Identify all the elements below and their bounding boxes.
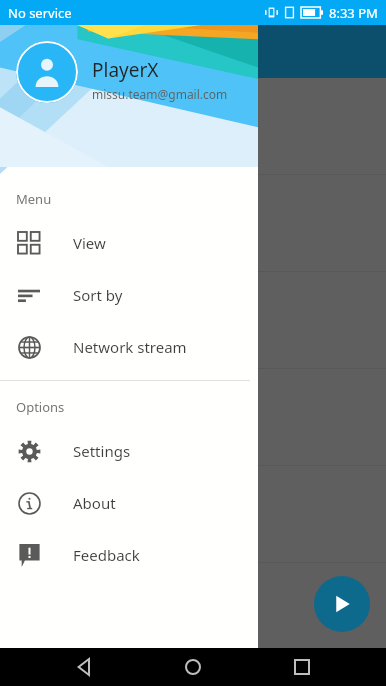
button[interactable]: View	[0, 217, 258, 269]
staticText: Menu	[16, 190, 52, 208]
staticText: sample_video_001.rmvb	[14, 213, 184, 233]
button[interactable]: Sort by	[0, 269, 258, 321]
button[interactable]: Back	[61, 648, 109, 686]
button[interactable]: Network stream	[0, 321, 258, 373]
staticText: No service	[8, 4, 72, 22]
staticText: 8:33 PM	[329, 4, 378, 22]
staticText: Big.Buck.Bunny.2008.1080p.mp4	[14, 116, 246, 136]
button[interactable]: Play	[314, 576, 370, 632]
staticText: PlayerX	[92, 57, 159, 83]
staticText: About	[73, 493, 116, 513]
staticText: movie_trailer_hd.rmvb	[14, 504, 172, 524]
button[interactable]: About	[0, 477, 258, 529]
staticText: missu.team@gmail.com	[92, 86, 228, 102]
button[interactable]: Home	[169, 648, 217, 686]
button[interactable]: Settings	[0, 425, 258, 477]
button[interactable]: Feedback	[0, 529, 258, 581]
staticText: Settings	[73, 441, 131, 461]
staticText: Feedback	[73, 545, 140, 565]
staticText: Network stream	[73, 337, 187, 357]
staticText: Sort by	[73, 285, 123, 305]
staticText: Options	[16, 398, 65, 416]
button[interactable]: Recent apps	[278, 648, 326, 686]
staticText: View	[73, 233, 106, 253]
staticText: documentary_part2.avi	[14, 407, 177, 427]
